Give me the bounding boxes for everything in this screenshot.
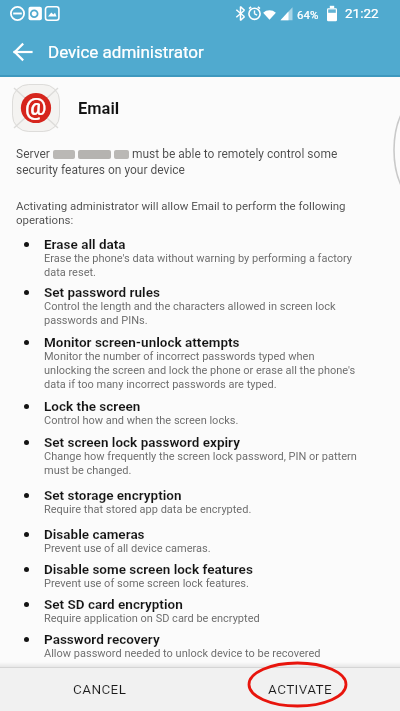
staticText: Set storage encryption	[44, 487, 182, 503]
staticText: Disable some screen lock features	[44, 561, 253, 577]
staticText: Require that stored app data be encrypte…	[44, 503, 252, 516]
button[interactable]: CANCEL	[0, 667, 200, 711]
staticText: 21:22	[345, 5, 379, 21]
staticText: Control the length and the characters al…	[44, 300, 336, 327]
staticText: Change how frequently the screen lock pa…	[44, 450, 357, 477]
staticText: CANCEL	[73, 681, 127, 697]
button[interactable]	[6, 35, 40, 69]
staticText: @	[25, 93, 47, 121]
staticText: Control how and when the screen locks.	[44, 414, 239, 427]
staticText: Email	[78, 99, 120, 118]
staticText: Prevent use of some screen lock features…	[44, 577, 249, 590]
staticText: Erase the phone's data without warning b…	[44, 252, 352, 279]
staticText: Erase all data	[44, 236, 126, 252]
staticText: Set screen lock password expiry	[44, 434, 240, 450]
staticText: must be able to remotely control some	[129, 147, 338, 161]
staticText: Monitor the number of incorrect password…	[44, 350, 356, 391]
button[interactable]: ACTIVATE	[200, 667, 400, 711]
staticText: Set password rules	[44, 284, 160, 300]
staticText: ACTIVATE	[268, 681, 333, 697]
staticText: Server	[16, 147, 53, 161]
staticText: Activating administrator will allow Emai…	[16, 199, 346, 227]
staticText: 64%	[297, 8, 319, 21]
staticText: Password recovery	[44, 631, 160, 647]
staticText: Allow password needed to unlock device t…	[44, 647, 321, 660]
staticText: Disable cameras	[44, 526, 145, 542]
staticText: Prevent use of all device cameras.	[44, 542, 211, 555]
staticText: Require application on SD card be encryp…	[44, 612, 260, 625]
staticText: Monitor screen-unlock attempts	[44, 334, 240, 350]
staticText: security features on your device	[16, 163, 185, 177]
staticText: Device administrator	[48, 42, 204, 62]
staticText: Set SD card encryption	[44, 596, 183, 612]
staticText: Lock the screen	[44, 398, 141, 414]
